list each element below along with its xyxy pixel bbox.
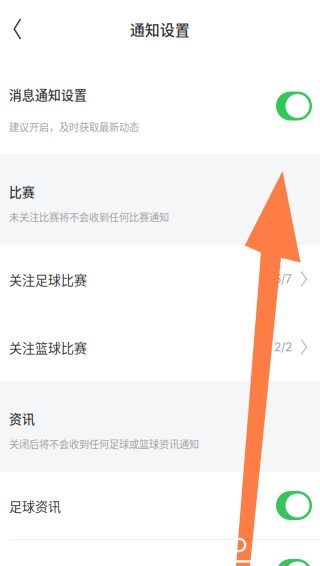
staticText: 足球资讯	[9, 496, 61, 515]
staticText: 关注篮球比赛	[9, 338, 87, 356]
button[interactable]: Back	[0, 8, 36, 50]
button[interactable]: 消息通知设置	[0, 58, 320, 154]
staticText: 2/2	[274, 340, 292, 354]
staticText: 关闭后将不会收到任何足球或篮球资讯通知	[9, 436, 199, 451]
staticText: 关注足球比赛	[9, 270, 87, 288]
staticText: 5/7	[274, 272, 292, 286]
staticText: 消息通知设置	[9, 85, 87, 103]
button[interactable]: 关注篮球比赛	[0, 313, 320, 381]
button[interactable]: 篮球资讯	[0, 540, 320, 566]
staticText: 比赛	[9, 182, 35, 200]
button[interactable]: 足球资讯	[0, 472, 320, 539]
staticText: 建议开启，及时获取最新动态	[9, 119, 139, 134]
button[interactable]: 关注足球比赛	[0, 245, 320, 313]
staticText: 资讯	[9, 409, 35, 427]
staticText: 通知设置	[130, 18, 190, 40]
staticText: 未关注比赛将不会收到任何比赛通知	[9, 209, 169, 224]
